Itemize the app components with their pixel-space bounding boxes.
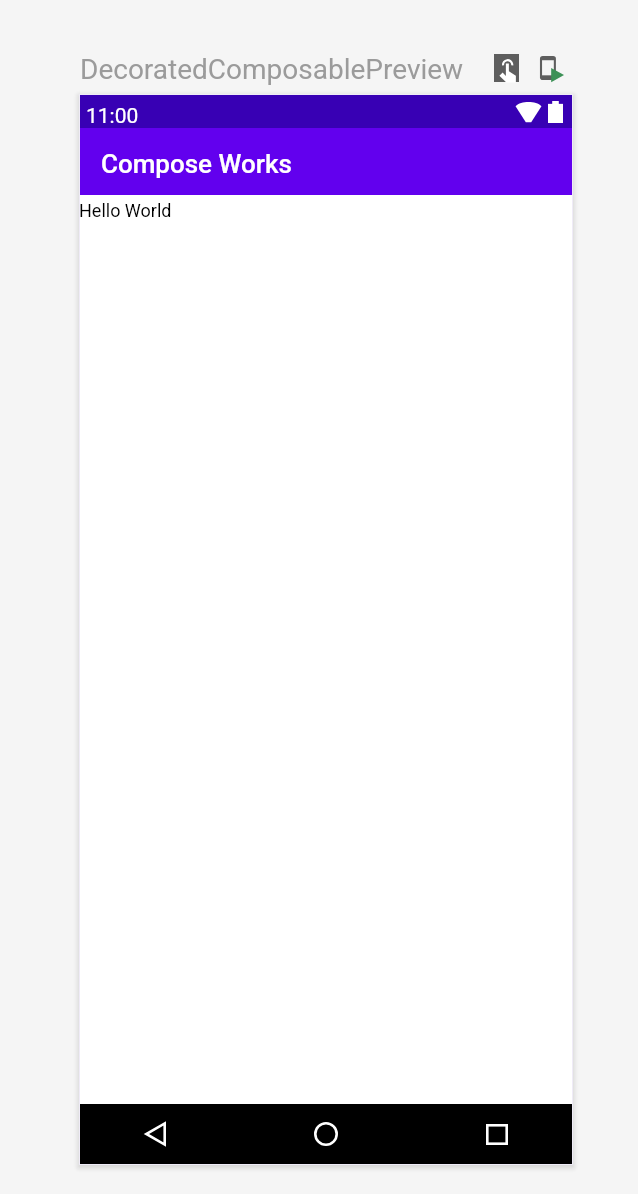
button[interactable]: Run on device: [538, 54, 566, 83]
staticText: Compose Works: [101, 149, 292, 179]
staticText: Hello World: [79, 200, 172, 221]
button[interactable]: Back: [135, 1114, 175, 1154]
button[interactable]: Interactive mode: [494, 54, 519, 82]
button[interactable]: Home: [306, 1114, 346, 1154]
staticText: DecoratedComposablePreview: [80, 53, 464, 86]
staticText: 11:00: [86, 104, 139, 129]
button[interactable]: Recent apps: [477, 1114, 517, 1154]
